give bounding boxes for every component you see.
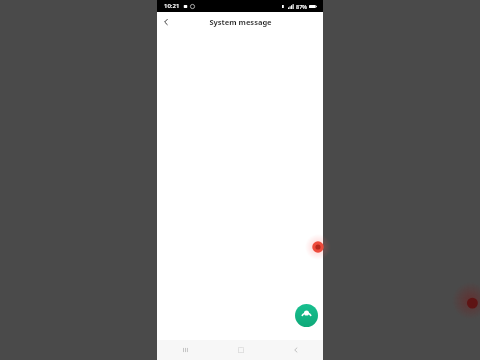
staticText: 87%: [296, 3, 307, 10]
button[interactable]: Back: [157, 13, 175, 31]
button[interactable]: Recents: [157, 340, 213, 360]
staticText: 10:21: [164, 2, 180, 10]
button[interactable]: Service: [295, 304, 318, 327]
staticText: System message: [209, 17, 272, 27]
